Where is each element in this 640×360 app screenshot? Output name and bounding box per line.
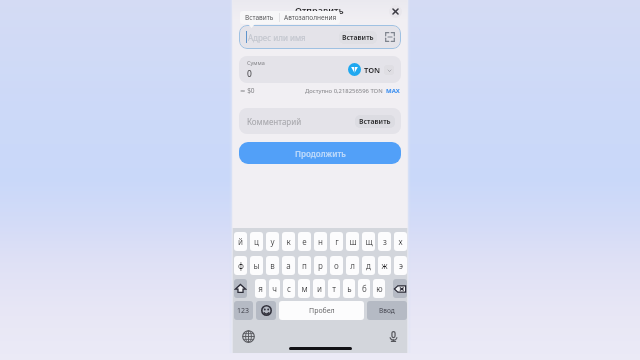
button[interactable]: ж xyxy=(378,256,391,275)
button[interactable]: Сумма xyxy=(239,56,401,83)
staticText: щ xyxy=(365,236,373,247)
button[interactable]: Вставить xyxy=(240,11,279,24)
button[interactable]: Удалить xyxy=(393,279,407,298)
staticText: Вставить xyxy=(359,117,391,126)
staticText: Отправить xyxy=(295,4,344,16)
staticText: б xyxy=(362,283,367,294)
staticText: е xyxy=(302,236,307,247)
staticText: ф xyxy=(238,260,244,271)
button[interactable]: г xyxy=(330,232,343,251)
staticText: о xyxy=(334,260,339,271)
button[interactable]: з xyxy=(378,232,391,251)
button[interactable]: Закрыть xyxy=(389,5,402,18)
staticText: м xyxy=(301,283,308,294)
button[interactable]: Диктовка xyxy=(387,330,400,343)
button[interactable]: Адрес или имя xyxy=(239,25,401,49)
button[interactable]: б xyxy=(358,279,370,298)
button[interactable]: м xyxy=(298,279,310,298)
staticText: Сумма xyxy=(247,59,265,66)
button[interactable]: к xyxy=(282,232,295,251)
staticText: з xyxy=(383,236,387,247)
button[interactable]: Пробел xyxy=(279,301,364,320)
staticText: г xyxy=(335,236,339,247)
button[interactable]: в xyxy=(266,256,279,275)
button[interactable]: ц xyxy=(250,232,263,251)
button[interactable]: у xyxy=(266,232,279,251)
staticText: у xyxy=(270,236,275,247)
staticText: Пробел xyxy=(309,306,335,316)
staticText: а xyxy=(286,260,291,271)
staticText: Автозаполнения xyxy=(284,13,337,22)
staticText: 123 xyxy=(237,306,250,316)
button[interactable]: Вставить xyxy=(339,31,377,44)
staticText: ы xyxy=(253,260,260,271)
staticText: ь xyxy=(347,283,352,294)
staticText: в xyxy=(270,260,275,271)
button[interactable]: л xyxy=(346,256,359,275)
staticText: с xyxy=(287,283,291,294)
staticText: й xyxy=(238,236,243,247)
button[interactable]: ч xyxy=(269,279,280,298)
staticText: р xyxy=(318,260,323,271)
button[interactable]: Продолжить xyxy=(239,142,401,164)
button[interactable]: ш xyxy=(346,232,359,251)
button[interactable]: п xyxy=(298,256,311,275)
staticText: ц xyxy=(254,236,259,247)
button[interactable]: Вставить xyxy=(355,115,395,128)
button[interactable]: я xyxy=(255,279,266,298)
button[interactable]: и xyxy=(313,279,325,298)
staticText: к xyxy=(286,236,291,247)
staticText: 0 xyxy=(247,68,252,80)
staticText: ш xyxy=(349,236,357,247)
staticText: и xyxy=(317,283,322,294)
staticText: л xyxy=(350,260,355,271)
staticText: Ввод xyxy=(379,306,395,315)
button[interactable]: 123 xyxy=(234,301,253,320)
staticText: э xyxy=(399,260,403,271)
staticText: х xyxy=(398,236,403,247)
button[interactable]: MAX xyxy=(386,87,400,95)
button[interactable]: й xyxy=(234,232,247,251)
button[interactable]: Автозаполнения xyxy=(280,11,340,24)
button[interactable]: Эмодзи xyxy=(256,301,276,320)
staticText: Продолжить xyxy=(295,148,346,159)
button[interactable]: х xyxy=(394,232,407,251)
button[interactable]: с xyxy=(283,279,295,298)
staticText: д xyxy=(366,260,371,271)
button[interactable]: ы xyxy=(250,256,263,275)
staticText: TON xyxy=(364,65,381,75)
staticText: ч xyxy=(272,283,277,294)
button[interactable]: а xyxy=(282,256,295,275)
staticText: Комментарий xyxy=(247,116,302,127)
staticText: Вставить xyxy=(245,13,274,22)
button[interactable]: э xyxy=(394,256,407,275)
button[interactable]: щ xyxy=(362,232,375,251)
staticText: п xyxy=(302,260,307,271)
button[interactable]: ь xyxy=(343,279,355,298)
staticText: Адрес или имя xyxy=(248,32,306,43)
button[interactable]: д xyxy=(362,256,375,275)
staticText: Доступно 0,218256596 TON xyxy=(305,87,383,95)
button[interactable]: Комментарий xyxy=(239,108,401,134)
staticText: я xyxy=(258,283,263,294)
button[interactable]: Сменить язык xyxy=(242,330,255,343)
button[interactable]: т xyxy=(328,279,340,298)
button[interactable]: о xyxy=(330,256,343,275)
button[interactable]: н xyxy=(314,232,327,251)
staticText: т xyxy=(332,283,336,294)
button[interactable]: ю xyxy=(373,279,385,298)
button[interactable]: Верхний регистр xyxy=(234,279,247,298)
button[interactable]: Сканировать QR xyxy=(384,31,396,43)
button[interactable]: Ввод xyxy=(367,301,407,320)
button[interactable]: р xyxy=(314,256,327,275)
button[interactable]: ф xyxy=(234,256,247,275)
staticText: ≈ $0 xyxy=(240,86,255,95)
staticText: н xyxy=(318,236,323,247)
staticText: Вставить xyxy=(342,33,374,42)
staticText: ж xyxy=(381,260,388,271)
button[interactable]: е xyxy=(298,232,311,251)
staticText: ю xyxy=(376,283,383,294)
